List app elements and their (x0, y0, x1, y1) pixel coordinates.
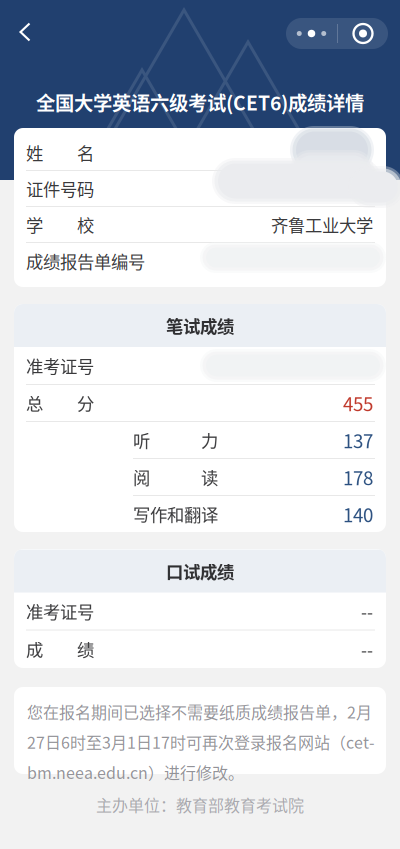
staticText: 总 分 (26, 390, 94, 416)
button[interactable]: More (286, 18, 337, 49)
button[interactable]: Back (18, 12, 60, 52)
button[interactable]: Close (338, 18, 388, 49)
staticText: 齐鲁工业大学 (271, 212, 373, 237)
staticText: 准考证号 (26, 353, 94, 378)
staticText: 成绩报告单编号 (26, 248, 145, 274)
staticText: -- (361, 598, 373, 624)
staticText: 学 校 (26, 212, 94, 237)
staticText: 137 (343, 426, 373, 453)
staticText: 准考证号 (26, 598, 94, 624)
staticText: 听 力 (133, 427, 218, 453)
staticText: 姓 名 (26, 140, 94, 165)
staticText: 证件号码 (26, 176, 94, 201)
staticText: 您在报名期间已选择不需要纸质成绩报告单，2月 (27, 700, 372, 723)
staticText: 写作和翻译 (133, 501, 218, 527)
staticText: 主办单位：教育部教育考试院 (96, 793, 304, 816)
staticText: 笔试成绩 (166, 313, 234, 338)
staticText: 阅 读 (133, 464, 218, 490)
staticText: 27日6时至3月1日17时可再次登录报名网站（cet- (27, 730, 375, 753)
staticText: -- (361, 636, 373, 662)
staticText: bm.neea.edu.cn）进行修改。 (27, 760, 244, 783)
staticText: 455 (343, 389, 373, 416)
staticText: 口试成绩 (166, 558, 234, 584)
staticText: 140 (343, 500, 373, 527)
staticText: 全国大学英语六级考试(CET6)成绩详情 (36, 88, 364, 116)
staticText: 成 绩 (26, 636, 94, 662)
staticText: 178 (343, 463, 373, 490)
